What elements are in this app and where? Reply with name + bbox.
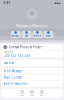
- staticText: FaceTime: [4, 61, 15, 65]
- button[interactable]: Notes: [20, 90, 24, 96]
- staticText: Photos: [29, 94, 34, 96]
- staticText: Flaviana Florescu: [16, 23, 48, 28]
- staticText: mobile: [4, 51, 14, 54]
- staticText: call: [24, 34, 28, 38]
- button[interactable]: mail: [43, 31, 53, 38]
- button[interactable]: FaceTime: [1, 60, 63, 66]
- staticText: +40 722 123 456: [4, 54, 31, 58]
- staticText: Notes: [20, 94, 24, 96]
- staticText: 9:41: [3, 1, 10, 5]
- staticText: Add to Favourites: [4, 82, 28, 85]
- button[interactable]: message: [11, 31, 21, 38]
- button[interactable]: Send Message: [1, 68, 63, 74]
- button[interactable]: video: [32, 31, 42, 38]
- staticText: message: [11, 34, 21, 38]
- staticText: Share Contact: [4, 76, 22, 79]
- button[interactable]: Contact Photo & Poster: [1, 44, 63, 50]
- button[interactable]: call: [21, 31, 31, 38]
- staticText: ▪▪▰: [55, 1, 61, 4]
- button[interactable]: Share Contact: [1, 74, 63, 80]
- staticText: Contact Photo & Poster: [9, 45, 42, 49]
- button[interactable]: mobile: [1, 50, 63, 58]
- staticText: Send Message: [4, 69, 23, 73]
- staticText: Links: [40, 94, 44, 96]
- button[interactable]: Photos: [29, 90, 34, 96]
- staticText: mail: [46, 34, 51, 38]
- button[interactable]: Links: [39, 90, 44, 96]
- button[interactable]: Add to Favourites: [1, 81, 63, 87]
- staticText: video: [33, 34, 41, 38]
